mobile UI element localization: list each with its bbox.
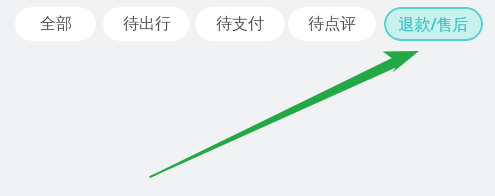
staticText: 待支付 xyxy=(216,14,264,34)
button[interactable]: 全部 xyxy=(15,7,96,41)
staticText: 待出行 xyxy=(123,14,171,34)
button[interactable]: 退款/售后 xyxy=(384,7,483,41)
staticText: 退款/售后 xyxy=(398,13,469,35)
button[interactable]: 待出行 xyxy=(103,7,190,41)
button[interactable]: 待点评 xyxy=(288,7,376,41)
staticText: 待点评 xyxy=(308,14,356,34)
button[interactable]: 待支付 xyxy=(195,7,285,41)
staticText: 全部 xyxy=(40,14,72,34)
